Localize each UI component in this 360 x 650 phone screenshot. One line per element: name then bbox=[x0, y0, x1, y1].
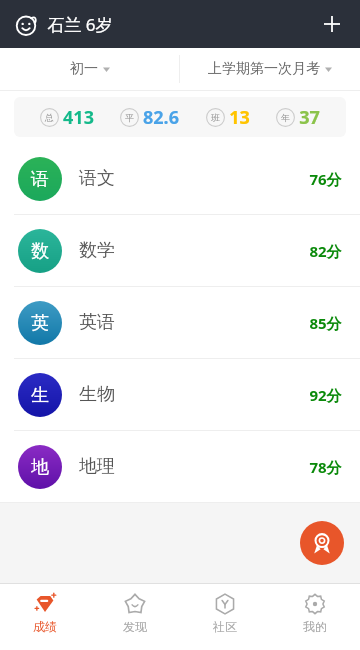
staticText: 82分 bbox=[309, 241, 342, 261]
staticText: 82.6 bbox=[143, 105, 179, 130]
button[interactable]: Add bbox=[312, 4, 352, 44]
staticText: 85分 bbox=[309, 313, 342, 333]
staticText: 英 bbox=[31, 312, 49, 335]
button[interactable]: 成绩 bbox=[0, 584, 90, 642]
button[interactable]: 上学期第一次月考 bbox=[180, 48, 360, 90]
staticText: 英语 bbox=[79, 311, 115, 334]
staticText: 数学 bbox=[79, 239, 115, 262]
button[interactable]: 生 bbox=[0, 359, 360, 430]
staticText: 年 bbox=[281, 112, 290, 123]
staticText: 总 bbox=[45, 112, 54, 123]
staticText: 语文 bbox=[79, 167, 115, 190]
button[interactable]: 发现 bbox=[90, 584, 180, 642]
button[interactable]: 地 bbox=[0, 431, 360, 502]
staticText: 37 bbox=[299, 105, 320, 130]
staticText: 76分 bbox=[309, 169, 342, 189]
staticText: 成绩 bbox=[33, 619, 57, 634]
button[interactable]: 石兰 6岁 bbox=[10, 8, 117, 41]
staticText: 上学期第一次月考 bbox=[208, 60, 320, 78]
button[interactable]: 社区 bbox=[180, 584, 270, 642]
staticText: 生 bbox=[31, 384, 49, 407]
button[interactable]: 我的 bbox=[270, 584, 360, 642]
staticText: 92分 bbox=[309, 385, 342, 405]
staticText: 数 bbox=[31, 240, 49, 263]
staticText: 初一 bbox=[70, 60, 98, 78]
button[interactable]: 数 bbox=[0, 215, 360, 286]
staticText: 413 bbox=[63, 105, 94, 130]
button[interactable]: 初一 bbox=[0, 48, 179, 90]
staticText: 社区 bbox=[213, 619, 237, 634]
button[interactable]: 语 bbox=[0, 143, 360, 214]
staticText: 语 bbox=[31, 168, 49, 191]
staticText: 地理 bbox=[79, 455, 115, 478]
staticText: 我的 bbox=[303, 619, 327, 634]
button[interactable]: 英 bbox=[0, 287, 360, 358]
staticText: 13 bbox=[229, 105, 250, 130]
staticText: 班 bbox=[211, 112, 220, 123]
staticText: 石兰 6岁 bbox=[47, 13, 113, 36]
staticText: 地 bbox=[31, 456, 49, 479]
staticText: 发现 bbox=[123, 619, 147, 634]
staticText: 78分 bbox=[309, 457, 342, 477]
button[interactable]: Achievements bbox=[300, 521, 344, 565]
staticText: 生物 bbox=[79, 383, 115, 406]
staticText: 平 bbox=[125, 112, 134, 123]
